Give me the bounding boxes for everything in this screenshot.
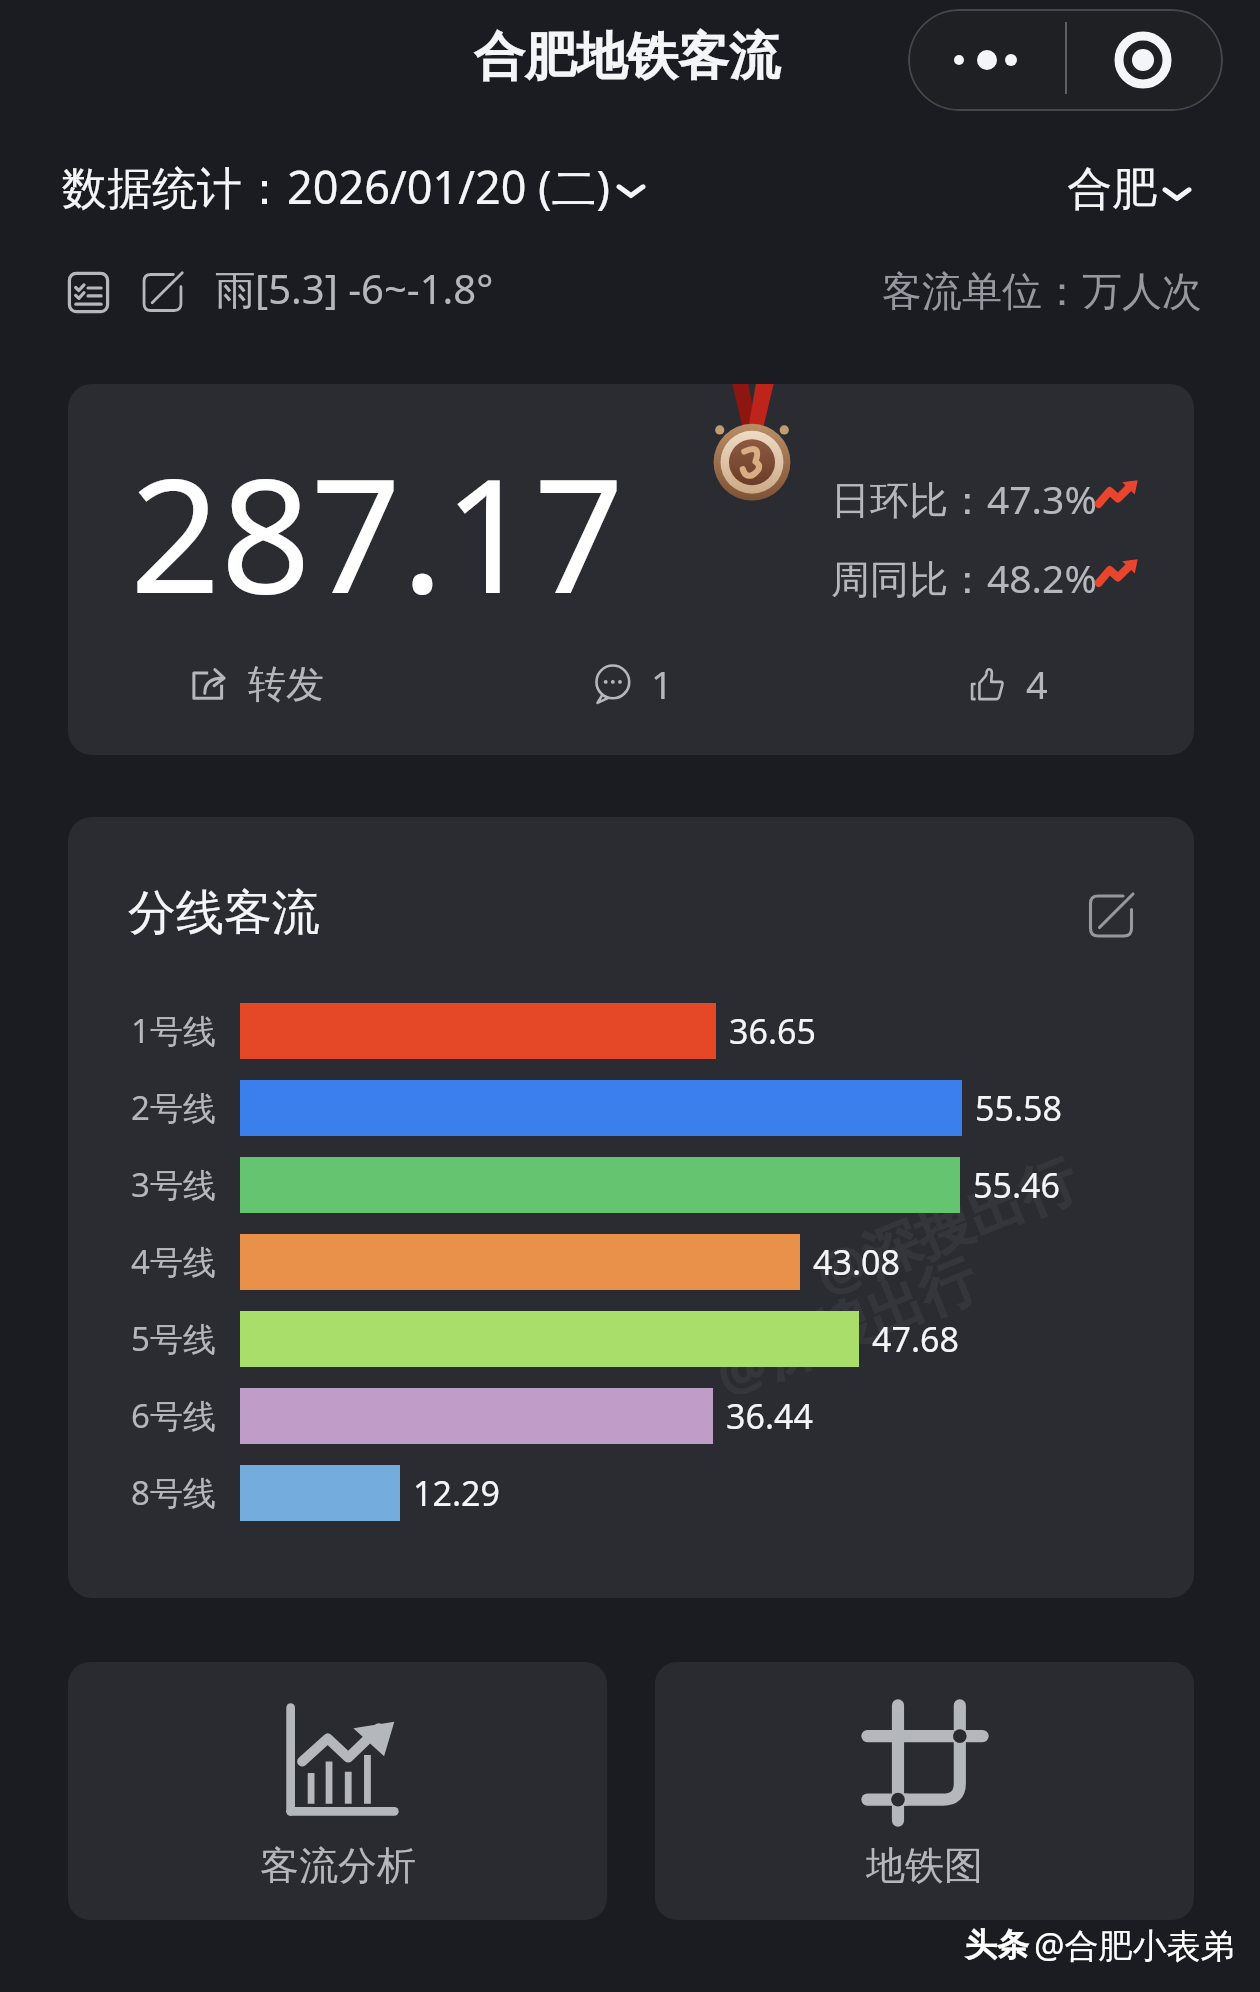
button[interactable]: 合肥: [1067, 153, 1197, 225]
staticText: 3号线: [131, 1162, 216, 1207]
staticText: 4: [1026, 658, 1048, 710]
staticText: 合肥地铁客流: [474, 25, 780, 89]
staticText: 头条: [965, 1925, 1029, 1965]
staticText: @合肥小表弟: [1034, 1922, 1235, 1968]
staticText: 客流单位：万人次: [882, 266, 1202, 316]
button[interactable]: 1: [444, 634, 819, 734]
staticText: 36.65: [729, 1008, 816, 1054]
staticText: 客流分析: [260, 1841, 416, 1890]
staticText: 数据统计：2026/01/20 (二): [62, 156, 611, 217]
staticText: 47.68: [872, 1316, 959, 1362]
staticText: 地铁图: [866, 1841, 983, 1890]
staticText: 分线客流: [128, 883, 320, 943]
button[interactable]: 地铁图: [655, 1662, 1194, 1920]
button[interactable]: 数据统计：2026/01/20 (二): [62, 150, 651, 222]
button[interactable]: Edit: [140, 270, 185, 315]
staticText: @深搜出行: [804, 1138, 1087, 1312]
button[interactable]: Edit lines: [1086, 891, 1136, 941]
staticText: 5号线: [131, 1316, 216, 1361]
staticText: 2号线: [131, 1085, 216, 1130]
staticText: 4号线: [131, 1239, 216, 1284]
staticText: 287.17: [130, 424, 625, 639]
staticText: 55.46: [973, 1162, 1060, 1208]
button[interactable]: Home: [1068, 9, 1223, 111]
staticText: 12.29: [413, 1470, 500, 1516]
button[interactable]: 4: [819, 634, 1194, 734]
staticText: 合肥: [1067, 161, 1157, 218]
staticText: 转发: [248, 660, 324, 708]
button[interactable]: More: [908, 9, 1065, 111]
staticText: 55.58: [975, 1085, 1062, 1131]
staticText: @深搜出行: [704, 1238, 987, 1412]
staticText: 36.44: [726, 1393, 813, 1439]
staticText: 周同比：48.2%: [831, 551, 1097, 604]
staticText: 1号线: [131, 1008, 216, 1053]
staticText: 日环比：47.3%: [831, 472, 1097, 525]
staticText: 43.08: [813, 1239, 900, 1285]
button[interactable]: Notes: [66, 270, 111, 315]
button[interactable]: 客流分析: [68, 1662, 607, 1920]
staticText: 1: [651, 658, 673, 710]
button[interactable]: 转发: [68, 634, 444, 734]
staticText: 6号线: [131, 1393, 216, 1438]
staticText: 雨[5.3] -6~-1.8°: [215, 261, 494, 316]
staticText: 8号线: [131, 1470, 216, 1515]
